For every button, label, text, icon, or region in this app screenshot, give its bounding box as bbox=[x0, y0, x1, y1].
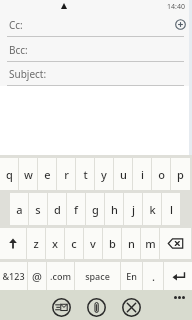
staticText: q bbox=[6, 167, 13, 182]
button[interactable]: Close bbox=[122, 298, 141, 317]
staticText: .com bbox=[50, 270, 71, 282]
button[interactable]: &123 bbox=[0, 262, 27, 290]
staticText: e bbox=[44, 167, 51, 182]
staticText: @ bbox=[32, 269, 42, 284]
button[interactable]: x bbox=[46, 228, 64, 259]
button[interactable]: e bbox=[38, 158, 56, 190]
staticText: y bbox=[101, 167, 107, 182]
button[interactable]: n bbox=[122, 228, 140, 259]
button[interactable]: g bbox=[86, 193, 104, 225]
button[interactable]: i bbox=[133, 158, 151, 190]
staticText: m bbox=[145, 236, 156, 251]
staticText: b bbox=[109, 236, 116, 251]
staticText: 14:40 bbox=[167, 2, 185, 12]
button[interactable]: k bbox=[143, 193, 161, 225]
staticText: w bbox=[24, 167, 33, 182]
button[interactable]: Add recipient bbox=[175, 19, 186, 30]
button[interactable]: h bbox=[105, 193, 123, 225]
staticText: n bbox=[128, 236, 135, 251]
button[interactable]: b bbox=[103, 228, 121, 259]
button[interactable]: Bcc: bbox=[9, 43, 28, 57]
staticText: &123 bbox=[2, 270, 25, 282]
staticText: u bbox=[120, 167, 127, 182]
staticText: v bbox=[90, 236, 96, 251]
staticText: d bbox=[54, 202, 61, 217]
staticText: r bbox=[64, 167, 69, 182]
button[interactable]: @ bbox=[28, 262, 46, 290]
staticText: l bbox=[170, 202, 173, 217]
staticText: k bbox=[149, 202, 156, 217]
button[interactable]: .com bbox=[47, 262, 74, 290]
button[interactable]: Enter bbox=[164, 262, 192, 290]
staticText: space bbox=[85, 270, 110, 282]
staticText: t bbox=[83, 167, 88, 182]
staticText: p bbox=[177, 167, 184, 182]
staticText: a bbox=[16, 202, 23, 217]
button[interactable]: j bbox=[124, 193, 142, 225]
button[interactable]: z bbox=[27, 228, 45, 259]
staticText: h bbox=[111, 202, 118, 217]
staticText: x bbox=[52, 236, 58, 251]
button[interactable]: More options bbox=[174, 296, 185, 299]
staticText: o bbox=[158, 167, 165, 182]
button[interactable]: Subject: bbox=[9, 67, 47, 81]
staticText: f bbox=[74, 202, 78, 217]
staticText: j bbox=[132, 202, 135, 217]
button[interactable]: q bbox=[0, 158, 18, 190]
button[interactable]: s bbox=[29, 193, 47, 225]
staticText: c bbox=[71, 236, 77, 251]
button[interactable]: d bbox=[48, 193, 66, 225]
button[interactable]: Shift bbox=[0, 228, 26, 259]
button[interactable]: f bbox=[67, 193, 85, 225]
staticText: z bbox=[33, 236, 39, 251]
button[interactable]: Cc: bbox=[9, 18, 23, 32]
button[interactable]: c bbox=[65, 228, 83, 259]
button[interactable]: . bbox=[143, 262, 163, 290]
button[interactable]: w bbox=[19, 158, 37, 190]
button[interactable]: Send bbox=[52, 298, 71, 317]
button[interactable]: Backspace bbox=[160, 228, 191, 259]
staticText: En bbox=[126, 270, 137, 282]
button[interactable]: a bbox=[10, 193, 28, 225]
button[interactable]: r bbox=[57, 158, 75, 190]
button[interactable]: v bbox=[84, 228, 102, 259]
staticText: i bbox=[141, 167, 144, 182]
button[interactable]: l bbox=[162, 193, 180, 225]
button[interactable]: m bbox=[141, 228, 159, 259]
button[interactable]: p bbox=[171, 158, 190, 190]
button[interactable]: o bbox=[152, 158, 170, 190]
button[interactable]: space bbox=[75, 262, 120, 290]
button[interactable]: u bbox=[114, 158, 132, 190]
button[interactable]: y bbox=[95, 158, 113, 190]
button[interactable]: Attach bbox=[87, 298, 106, 317]
staticText: . bbox=[152, 269, 155, 284]
button[interactable]: En bbox=[121, 262, 142, 290]
staticText: s bbox=[35, 202, 41, 217]
staticText: g bbox=[92, 202, 99, 217]
button[interactable]: t bbox=[76, 158, 94, 190]
